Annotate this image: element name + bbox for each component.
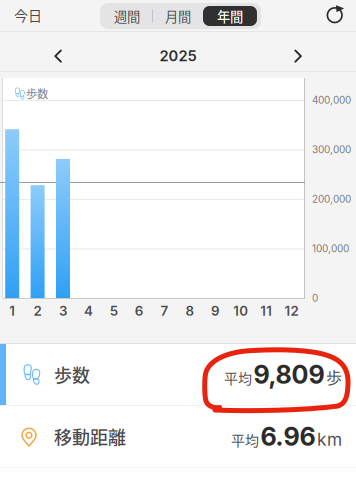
staticText: 週間 [114,6,140,26]
staticText: 8 [185,303,194,319]
staticText: 0 [312,292,318,304]
staticText: 6.96 [260,421,315,452]
staticText: 9 [211,303,220,319]
staticText: 歩 [326,365,342,388]
staticText: km [317,429,342,450]
staticText: 12 [285,303,299,319]
staticText: 4 [84,303,93,319]
staticText: 歩数 [26,85,48,101]
staticText: 11 [260,303,272,319]
staticText: 5 [110,303,118,319]
button[interactable]: 月間 [153,5,203,27]
staticText: 300,000 [312,143,351,156]
staticText: 3 [59,303,67,319]
staticText: 歩数 [54,361,90,388]
staticText: 100,000 [312,242,349,255]
staticText: 年間 [217,6,243,26]
staticText: 月間 [165,6,191,26]
staticText: 200,000 [312,193,351,205]
button[interactable]: 移動距離 [0,406,356,467]
button[interactable]: Next year [283,41,313,71]
staticText: 400,000 [312,94,351,106]
staticText: 移動距離 [54,423,126,450]
staticText: 1 [9,303,15,319]
staticText: 7 [161,303,169,319]
staticText: 平均 [231,429,259,450]
staticText: 平均 [224,367,252,388]
button[interactable]: Refresh [319,0,351,30]
staticText: 2025 [159,47,196,65]
button[interactable]: 週間 [102,5,152,27]
staticText: 2 [34,303,42,319]
staticText: 6 [135,303,144,319]
button[interactable]: 年間 [203,6,257,26]
staticText: 今日 [14,5,42,25]
button[interactable]: 歩数 [0,344,356,405]
staticText: 9,809 [253,359,324,390]
button[interactable]: 今日 [14,1,66,29]
staticText: 10 [233,303,248,319]
button[interactable]: Previous year [43,41,73,71]
